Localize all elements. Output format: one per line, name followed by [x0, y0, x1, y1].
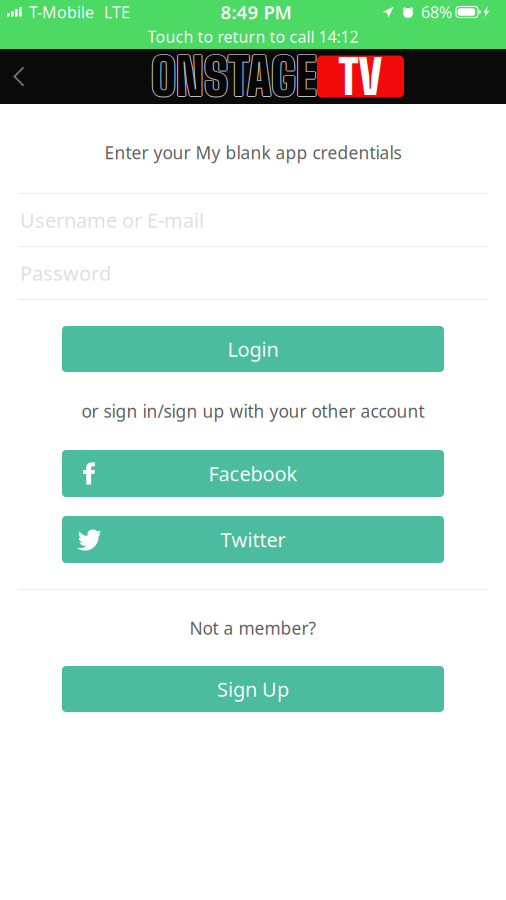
button[interactable]: Password	[0, 247, 506, 300]
staticText: LTE	[104, 1, 130, 23]
button[interactable]: Back	[0, 49, 38, 104]
staticText: ONSTAGE	[150, 46, 316, 107]
staticText: Not a member?	[189, 616, 316, 639]
button[interactable]: Twitter	[62, 516, 444, 563]
staticText: TV	[338, 48, 382, 105]
staticText: T-Mobile	[29, 1, 94, 23]
staticText: Facebook	[208, 460, 297, 487]
staticText: 8:49 PM	[220, 0, 291, 24]
staticText: 68%	[421, 1, 452, 23]
button[interactable]: Login	[62, 326, 444, 372]
button[interactable]: Sign Up	[62, 666, 444, 712]
staticText: Touch to return to call 14:12	[147, 26, 358, 47]
staticText: or sign in/sign up with your other accou…	[81, 399, 424, 422]
staticText: Sign Up	[217, 676, 289, 702]
button[interactable]: Facebook	[62, 450, 444, 497]
staticText: ONSTAGE	[151, 46, 317, 107]
staticText: ONSTAGE	[152, 46, 318, 107]
staticText: Username or E-mail	[20, 207, 204, 233]
staticText: Password	[20, 260, 111, 286]
staticText: Login	[227, 336, 278, 362]
staticText: Enter your My blank app credentials	[104, 141, 401, 164]
staticText: ONSTAGE	[151, 47, 317, 108]
staticText: Twitter	[220, 526, 285, 553]
button[interactable]: Username or E-mail	[0, 194, 506, 247]
staticText: ONSTAGE	[151, 45, 317, 106]
